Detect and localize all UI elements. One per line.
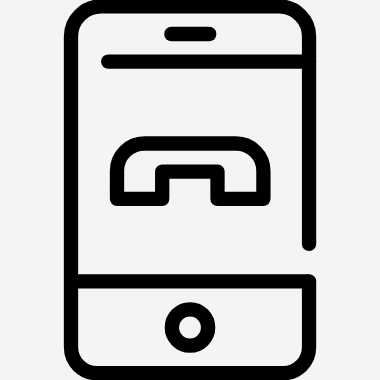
button[interactable]: Mobile phone call [0,0,380,380]
